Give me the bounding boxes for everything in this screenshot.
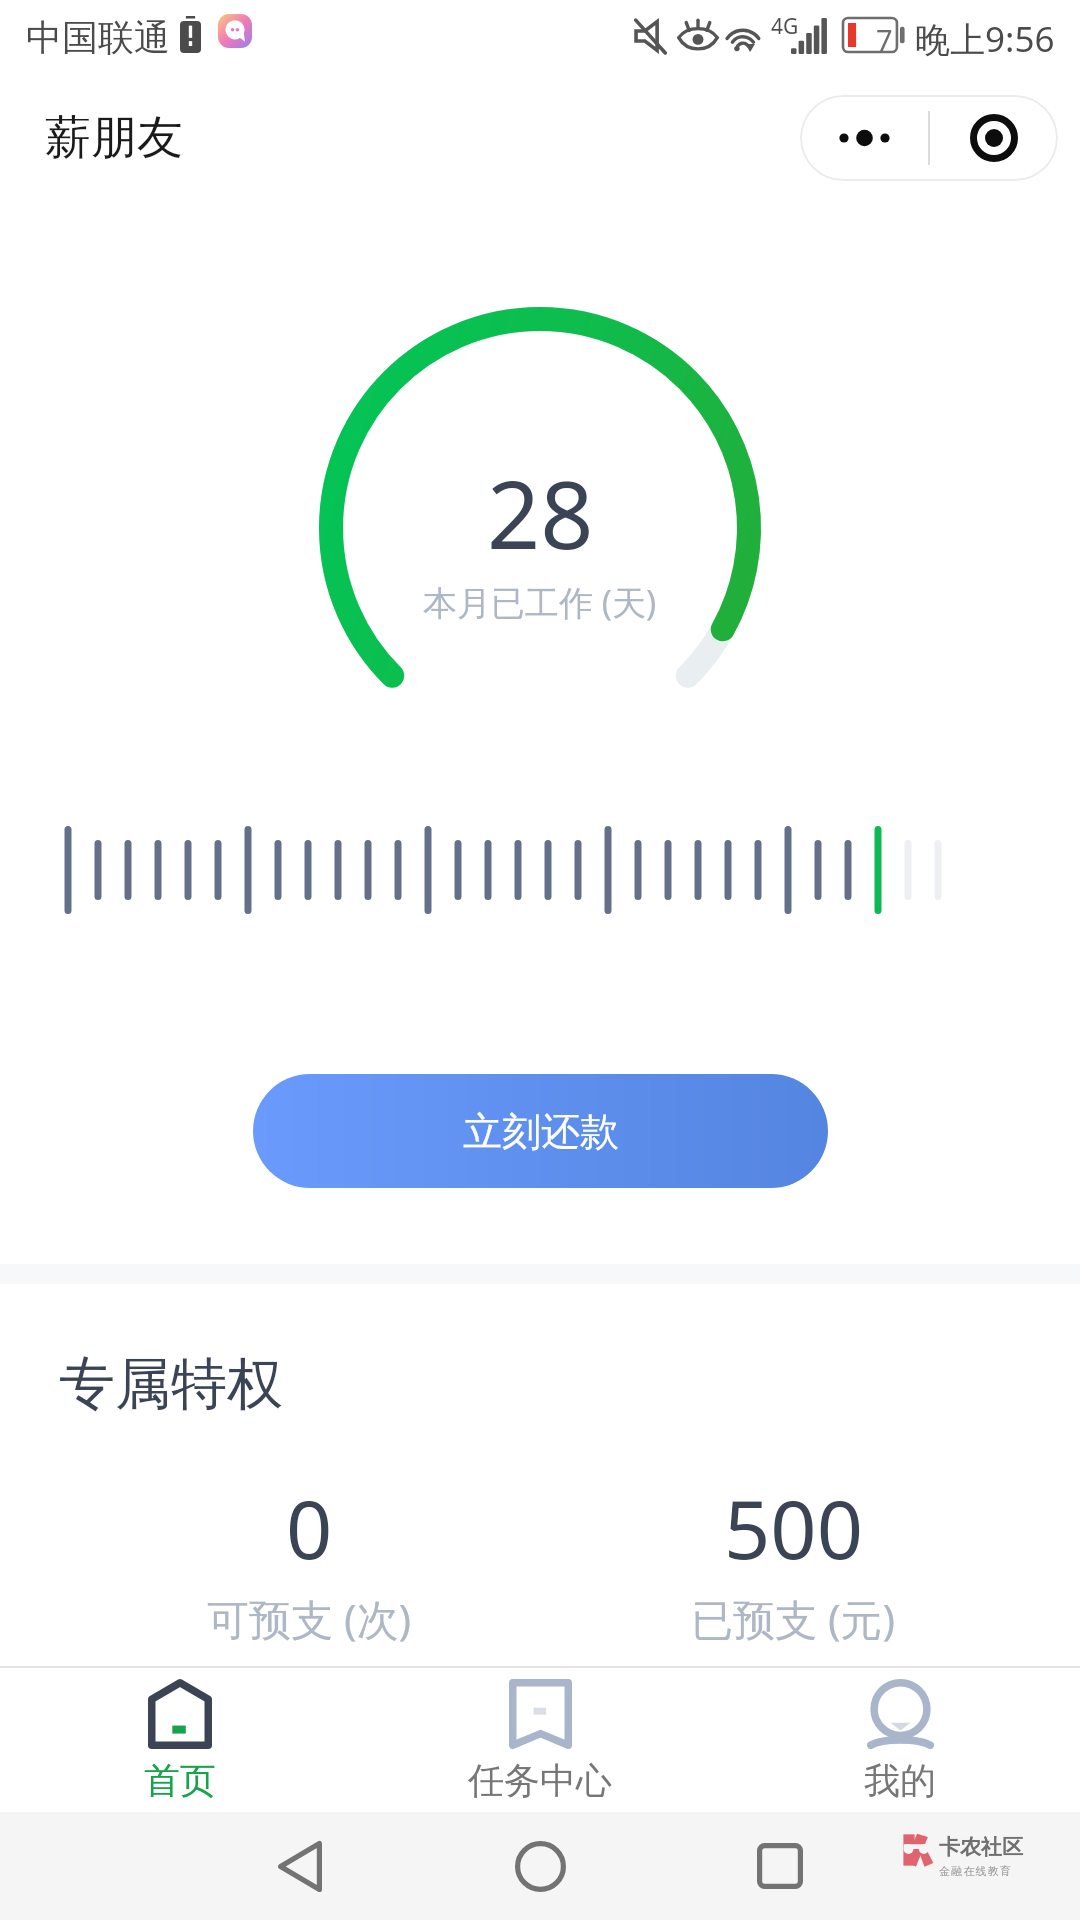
button[interactable]: 关闭小程序	[930, 95, 1058, 181]
button[interactable]: 500	[551, 1472, 1035, 1647]
staticText: 0	[286, 1472, 333, 1582]
staticText: 可预支 (次)	[207, 1590, 412, 1647]
staticText: 我的	[864, 1758, 936, 1803]
staticText: 本月已工作 (天)	[423, 579, 657, 625]
staticText: 立刻还款	[463, 1107, 619, 1156]
button[interactable]: 任务中心	[360, 1668, 720, 1812]
staticText: 已预支 (元)	[691, 1590, 896, 1647]
staticText: 专属特权	[59, 1349, 283, 1420]
staticText: 7	[876, 20, 893, 59]
staticText: 500	[724, 1472, 863, 1582]
button[interactable]: 返回	[255, 1821, 345, 1911]
button[interactable]: 我的	[720, 1668, 1080, 1812]
button[interactable]: 最近任务	[735, 1821, 825, 1911]
staticText: 晚上9:56	[915, 15, 1055, 63]
button[interactable]: 更多	[800, 95, 928, 181]
staticText: 中国联通	[26, 15, 170, 60]
button[interactable]: 首页	[0, 1668, 360, 1812]
staticText: 首页	[144, 1758, 216, 1803]
staticText: 4G	[771, 12, 799, 41]
staticText: 任务中心	[468, 1758, 612, 1803]
staticText: 金融在线教育	[939, 1864, 1013, 1878]
button[interactable]: 立刻还款	[253, 1074, 828, 1188]
staticText: 28	[487, 450, 594, 577]
staticText: 薪朋友	[45, 109, 183, 167]
staticText: 卡农社区	[939, 1834, 1023, 1860]
button[interactable]: 主页	[495, 1821, 585, 1911]
button[interactable]: 0	[67, 1472, 551, 1647]
